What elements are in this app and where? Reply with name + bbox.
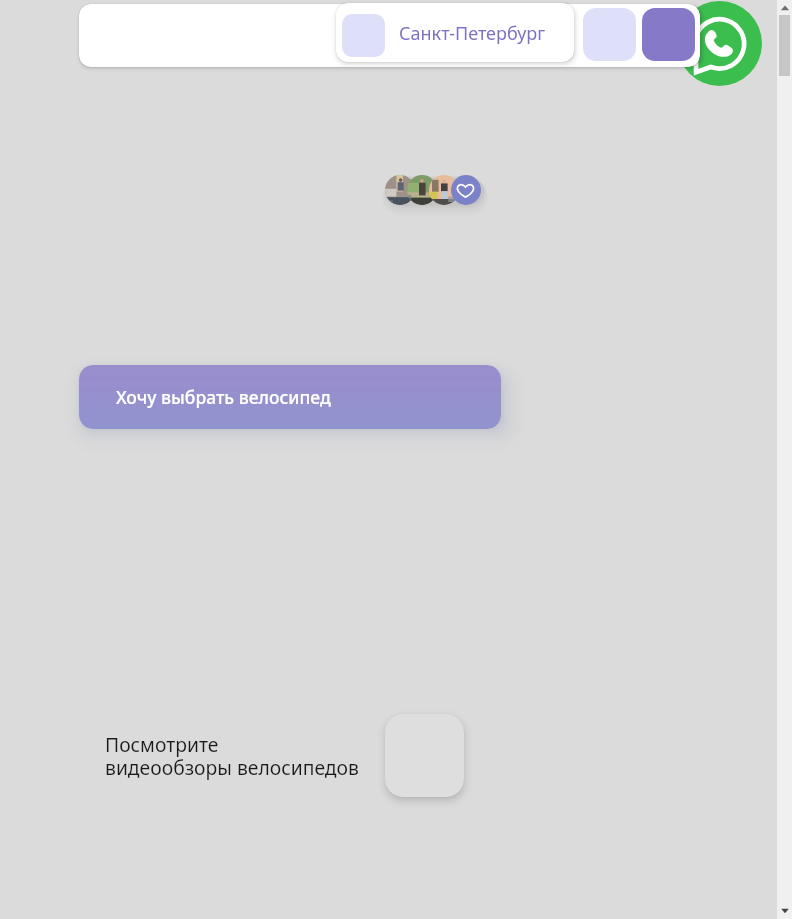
button[interactable]: Menu <box>642 8 695 61</box>
button[interactable]: Отзыв клиента 2 <box>407 175 437 205</box>
button[interactable]: Санкт-Петербург <box>342 4 546 62</box>
staticText: Хочу выбрать велосипед <box>116 385 331 409</box>
button[interactable]: Favorites <box>451 175 481 205</box>
button[interactable] <box>79 4 700 67</box>
button[interactable]: Отзыв клиента 3 <box>429 175 459 205</box>
staticText: Санкт-Петербург <box>399 21 546 46</box>
button[interactable]: WhatsApp <box>677 1 762 86</box>
staticText: Посмотрите видеообзоры велосипедов <box>105 731 359 781</box>
button[interactable]: Cart <box>583 8 636 61</box>
button[interactable]: Отзыв клиента 1 <box>385 175 415 205</box>
button[interactable]: Хочу выбрать велосипед <box>79 365 501 429</box>
button[interactable]: Play video <box>385 714 464 797</box>
